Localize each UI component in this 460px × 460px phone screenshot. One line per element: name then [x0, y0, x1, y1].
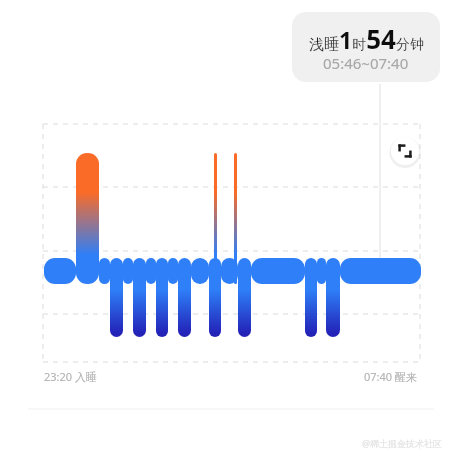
- staticText: @稀土掘金技术社区: [362, 437, 443, 449]
- button[interactable]: 浅睡1时54分钟: [292, 12, 440, 82]
- button[interactable]: Expand chart: [391, 137, 419, 165]
- staticText: 07:40 醒来: [364, 369, 417, 384]
- staticText: 05:46~07:40: [323, 53, 409, 73]
- staticText: 23:20 入睡: [44, 369, 97, 384]
- staticText: 浅睡1时54分钟: [309, 21, 424, 56]
